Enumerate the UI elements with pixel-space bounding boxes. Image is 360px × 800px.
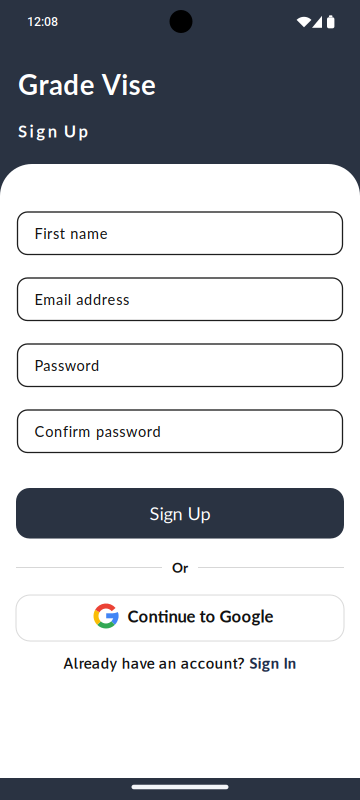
staticText: i — [30, 121, 34, 141]
staticText: Email address — [34, 290, 129, 308]
button[interactable]: Continue to Google — [16, 595, 344, 641]
staticText: Already have an account? — [63, 654, 244, 672]
button[interactable]: Sign In — [249, 654, 296, 672]
staticText: g — [36, 121, 45, 141]
staticText: p — [78, 121, 87, 141]
staticText: Grade Vise — [18, 68, 156, 101]
staticText: First name — [34, 224, 108, 242]
staticText: U — [64, 121, 76, 141]
staticText: S — [18, 121, 27, 141]
staticText: Continue to Google — [127, 606, 273, 626]
staticText: 12:08 — [27, 14, 58, 29]
button[interactable]: Password — [17, 344, 342, 386]
button[interactable]: Confirm password — [17, 410, 342, 452]
staticText: n — [48, 121, 57, 141]
staticText: Sign Up — [149, 502, 210, 524]
staticText: Confirm password — [34, 422, 160, 440]
staticText: Sign In — [249, 654, 296, 672]
button[interactable]: Email address — [17, 278, 342, 320]
staticText: Password — [34, 356, 99, 374]
button[interactable]: Sign Up — [16, 488, 344, 538]
button[interactable]: First name — [17, 212, 342, 254]
staticText: Or — [172, 559, 188, 576]
